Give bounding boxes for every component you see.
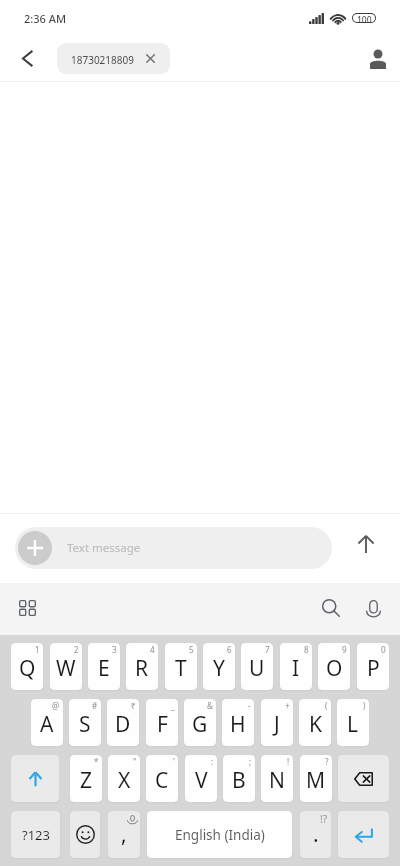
staticText: 3 [112, 644, 117, 655]
staticText: H [230, 710, 246, 739]
button[interactable]: X [108, 755, 140, 802]
staticText: K [309, 710, 322, 739]
staticText: _ [171, 700, 175, 711]
staticText: !? [320, 812, 328, 826]
staticText: . [313, 820, 319, 849]
staticText: G [192, 710, 208, 739]
staticText: & [207, 700, 213, 711]
staticText: # [92, 700, 98, 711]
staticText: J [274, 710, 280, 739]
button[interactable]: O [318, 643, 350, 690]
button[interactable]: U [241, 643, 273, 690]
button[interactable]: D [107, 699, 139, 746]
staticText: 4 [150, 644, 155, 655]
staticText: L [347, 710, 359, 739]
staticText: Y [213, 654, 225, 683]
button[interactable]: Text message [15, 527, 332, 569]
button[interactable]: I [280, 643, 312, 690]
staticText: 5 [189, 644, 194, 655]
button[interactable]: Enter [338, 811, 389, 858]
button[interactable]: A [31, 699, 63, 746]
staticText: * [94, 756, 99, 767]
staticText: F [157, 710, 168, 739]
staticText: English (India) [175, 826, 265, 844]
button[interactable]: T [165, 643, 197, 690]
staticText: ₹ [131, 700, 136, 711]
button[interactable]: Voice input [357, 592, 389, 624]
staticText: S [79, 710, 91, 739]
staticText: V [195, 766, 208, 795]
staticText: N [269, 766, 285, 795]
staticText: X [118, 766, 131, 795]
button[interactable]: . [300, 811, 331, 858]
button[interactable]: Shift [11, 755, 59, 802]
button[interactable]: Q [11, 643, 43, 690]
button[interactable]: 18730218809 [57, 43, 170, 74]
staticText: Z [80, 766, 93, 795]
staticText: ?123 [22, 826, 50, 844]
staticText: Q [19, 654, 36, 683]
button[interactable]: V [185, 755, 217, 802]
button[interactable]: J [261, 699, 293, 746]
button[interactable]: P [357, 643, 389, 690]
button[interactable]: B [223, 755, 255, 802]
button[interactable]: Keyboard options [11, 592, 43, 624]
staticText: C [155, 766, 169, 795]
button[interactable]: N [261, 755, 293, 802]
staticText: 100 [357, 14, 372, 22]
staticText: U [249, 654, 265, 683]
staticText: ! [287, 756, 290, 767]
staticText: : [211, 756, 214, 767]
button[interactable]: C [146, 755, 178, 802]
button[interactable]: Search [315, 592, 347, 624]
staticText: B [232, 766, 246, 795]
button[interactable]: , [108, 811, 140, 858]
button[interactable]: F [146, 699, 178, 746]
staticText: I [292, 654, 300, 683]
staticText: - [248, 700, 251, 711]
button[interactable]: Contact details [357, 38, 399, 80]
staticText: ( [325, 700, 328, 711]
button[interactable]: L [337, 699, 369, 746]
staticText: 7 [265, 644, 270, 655]
staticText: 6 [227, 644, 232, 655]
staticText: ; [249, 756, 252, 767]
button[interactable]: S [69, 699, 101, 746]
staticText: Text message [67, 540, 141, 556]
button[interactable]: W [50, 643, 82, 690]
staticText: 2:36 AM [24, 11, 67, 26]
staticText: 9 [342, 644, 347, 655]
button[interactable]: Emoji [70, 811, 100, 858]
staticText: 0 [381, 644, 386, 655]
staticText: 18730218809 [71, 53, 134, 67]
button[interactable]: G [184, 699, 216, 746]
staticText: " [133, 756, 137, 767]
staticText: E [98, 654, 110, 683]
button[interactable]: R [126, 643, 158, 690]
staticText: ) [363, 700, 366, 711]
button[interactable]: Symbols [11, 811, 60, 858]
button[interactable]: E [88, 643, 120, 690]
button[interactable]: Z [70, 755, 102, 802]
staticText: 1 [35, 644, 40, 655]
button[interactable]: M [300, 755, 332, 802]
button[interactable]: Y [203, 643, 235, 690]
button[interactable]: Backspace [338, 755, 389, 802]
staticText: + [285, 700, 290, 711]
staticText: D [115, 710, 131, 739]
staticText: 2 [74, 644, 79, 655]
staticText: , [121, 820, 127, 849]
button[interactable]: H [222, 699, 254, 746]
staticText: R [135, 654, 149, 683]
staticText: O [326, 654, 343, 683]
staticText: @ [52, 700, 60, 711]
button[interactable]: Space [147, 811, 292, 858]
staticText: 8 [304, 644, 309, 655]
staticText: ' [173, 756, 175, 767]
staticText: M [306, 766, 326, 795]
staticText: ? [325, 756, 329, 767]
button[interactable]: K [299, 699, 331, 746]
staticText: W [56, 654, 76, 683]
button[interactable]: Back [7, 37, 49, 79]
button[interactable]: Send [345, 523, 387, 565]
